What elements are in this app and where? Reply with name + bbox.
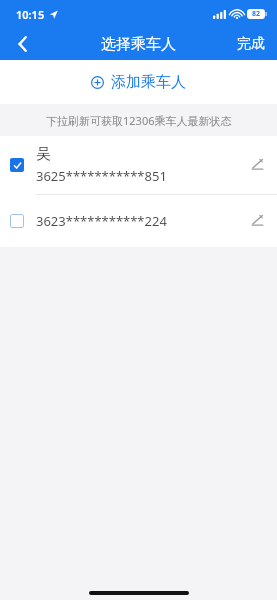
button[interactable]: Not selected xyxy=(10,214,24,228)
staticText: 下拉刷新可获取12306乘车人最新状态 xyxy=(46,113,232,128)
button[interactable]: Selected xyxy=(10,158,24,172)
staticText: 选择乘车人 xyxy=(101,35,176,54)
staticText: 3625***********851 xyxy=(36,167,167,185)
button[interactable]: Edit passenger xyxy=(237,145,277,185)
button[interactable]: Not selected xyxy=(0,195,277,247)
staticText: 3623***********224 xyxy=(36,212,167,230)
button[interactable]: 添加乘车人 xyxy=(0,60,277,104)
staticText: 吴 xyxy=(36,145,51,164)
button[interactable]: Back xyxy=(0,28,44,60)
button[interactable]: Edit passenger xyxy=(237,201,277,241)
staticText: 完成 xyxy=(237,35,265,53)
staticText: 82 xyxy=(252,9,261,19)
staticText: 10:15 xyxy=(16,7,45,22)
button[interactable]: 完成 xyxy=(225,28,277,60)
staticText: 添加乘车人 xyxy=(111,73,186,92)
button[interactable]: Selected xyxy=(0,136,277,194)
